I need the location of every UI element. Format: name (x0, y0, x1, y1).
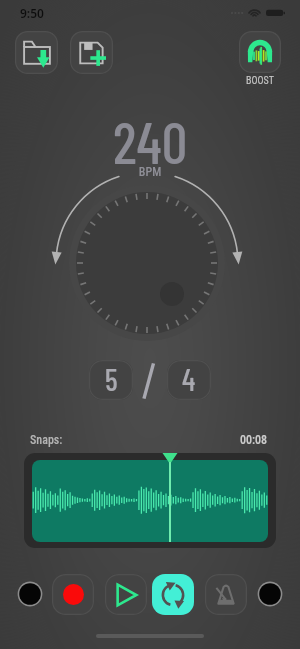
button[interactable]: Open file (15, 31, 58, 74)
button[interactable]: Beats per bar (89, 360, 133, 400)
button[interactable]: Save file (70, 31, 113, 74)
button[interactable]: Loop (152, 574, 194, 615)
staticText: Snaps: (30, 433, 63, 447)
button[interactable]: Record (52, 574, 94, 615)
button[interactable]: Note value (167, 360, 211, 400)
button[interactable]: Metronome (205, 574, 247, 615)
staticText: 240 (0, 107, 300, 175)
button[interactable]: Boost (239, 31, 281, 73)
staticText: BPM (0, 165, 300, 179)
button[interactable]: Waveform (24, 453, 276, 548)
button[interactable]: More (257, 581, 283, 607)
button[interactable]: Play (105, 574, 147, 615)
staticText: 4 (182, 361, 196, 397)
staticText: 9:50 (20, 5, 44, 21)
staticText: 5 (105, 361, 118, 397)
staticText: 00:08 (240, 433, 268, 447)
staticText: BOOST (239, 75, 281, 87)
button[interactable]: Menu (17, 581, 43, 607)
